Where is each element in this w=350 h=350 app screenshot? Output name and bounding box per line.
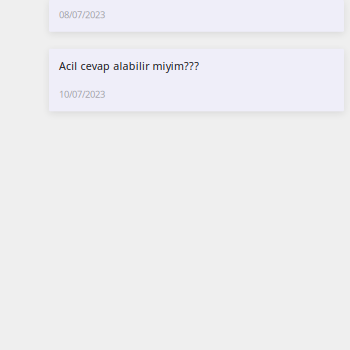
- staticText: 08/07/2023: [59, 8, 105, 21]
- staticText: 10/07/2023: [59, 88, 105, 100]
- button[interactable]: 08/07/2023: [49, 0, 344, 32]
- staticText: Acil cevap alabilir miyim???: [59, 59, 199, 73]
- button[interactable]: Acil cevap alabilir miyim???: [49, 49, 344, 111]
